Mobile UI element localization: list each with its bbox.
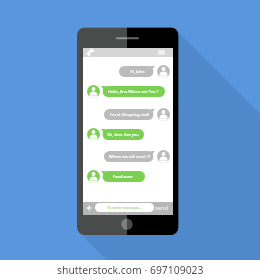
button[interactable]: Where we will meet ?? bbox=[104, 151, 155, 162]
staticText: Where we will meet ?? bbox=[109, 154, 151, 159]
button[interactable]: Video call bbox=[154, 48, 168, 57]
button[interactable]: To write message... bbox=[95, 203, 154, 212]
button[interactable]: Food zone bbox=[101, 171, 145, 182]
staticText: send bbox=[155, 204, 169, 212]
staticText: Hi, John bbox=[130, 69, 145, 74]
staticText: shutterstock.com · 697109023 bbox=[57, 263, 204, 277]
staticText: Food zone bbox=[113, 174, 133, 179]
staticText: Hello, Ann.Where are You ? bbox=[108, 89, 159, 94]
staticText: To write message... bbox=[107, 205, 142, 210]
button[interactable]: Attach bbox=[85, 204, 93, 212]
button[interactable]: Hello, Ann.Where are You ? bbox=[101, 86, 165, 97]
button[interactable]: Call bbox=[83, 48, 97, 57]
button[interactable]: Hi, John bbox=[119, 66, 155, 77]
button[interactable]: I'm at Shopping mall bbox=[104, 109, 155, 120]
staticText: I'm at Shopping mall bbox=[110, 112, 149, 117]
button[interactable]: send bbox=[154, 204, 170, 212]
button[interactable]: Ok, Ann. See you bbox=[101, 129, 144, 140]
staticText: Ok, Ann. See you bbox=[107, 132, 139, 137]
